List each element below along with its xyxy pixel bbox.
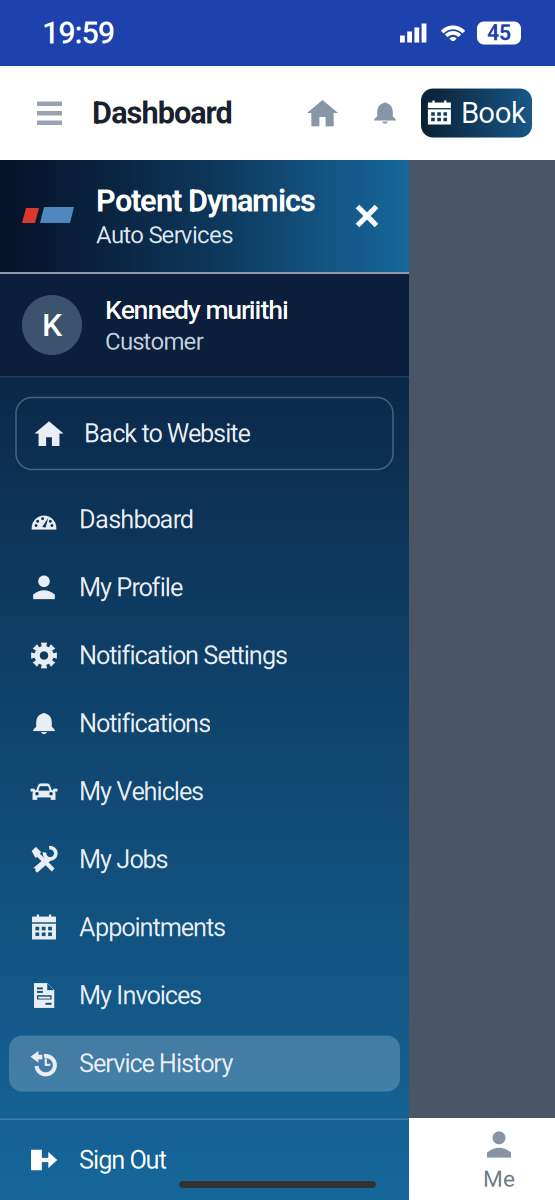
button[interactable]: My Invoices (9, 967, 400, 1023)
staticText: My Invoices (79, 981, 202, 1010)
staticText: Dashboard (79, 505, 194, 534)
staticText: My Vehicles (79, 777, 204, 806)
staticText: Potent Dynamics (96, 183, 316, 219)
staticText: Appointments (79, 913, 226, 942)
button[interactable]: Notifications (361, 86, 409, 140)
button[interactable]: Back to Website (16, 397, 393, 469)
button[interactable]: Me (443, 1130, 555, 1192)
button[interactable]: My Jobs (9, 831, 400, 887)
staticText: Auto Services (96, 221, 233, 249)
staticText: Service History (79, 1049, 233, 1078)
button[interactable]: Sign Out (0, 1120, 409, 1200)
button[interactable]: Service History (9, 1035, 400, 1091)
button[interactable]: Book (421, 88, 532, 137)
button[interactable]: Notification Settings (9, 627, 400, 683)
staticText: Notification Settings (79, 641, 288, 670)
button[interactable]: Open menu (25, 81, 74, 144)
button[interactable]: My Profile (9, 559, 400, 615)
staticText: 19:59 (42, 15, 115, 51)
staticText: Me (483, 1166, 515, 1192)
staticText: Dashboard (92, 95, 233, 131)
button[interactable]: Close menu (343, 192, 391, 240)
staticText: Kennedy muriithi (105, 294, 289, 326)
staticText: K (42, 306, 62, 344)
staticText: 45 (487, 20, 511, 45)
button[interactable]: Home (296, 83, 349, 142)
staticText: Customer (105, 328, 204, 356)
button[interactable]: Appointments (9, 899, 400, 955)
button[interactable]: Dashboard (9, 491, 400, 547)
staticText: Notifications (79, 709, 211, 738)
button[interactable]: Notifications (9, 695, 400, 751)
staticText: Back to Website (84, 419, 250, 448)
staticText: My Jobs (79, 845, 169, 874)
button[interactable]: My Vehicles (9, 763, 400, 819)
staticText: Sign Out (79, 1145, 167, 1175)
staticText: Book (461, 96, 526, 130)
staticText: My Profile (79, 573, 183, 602)
